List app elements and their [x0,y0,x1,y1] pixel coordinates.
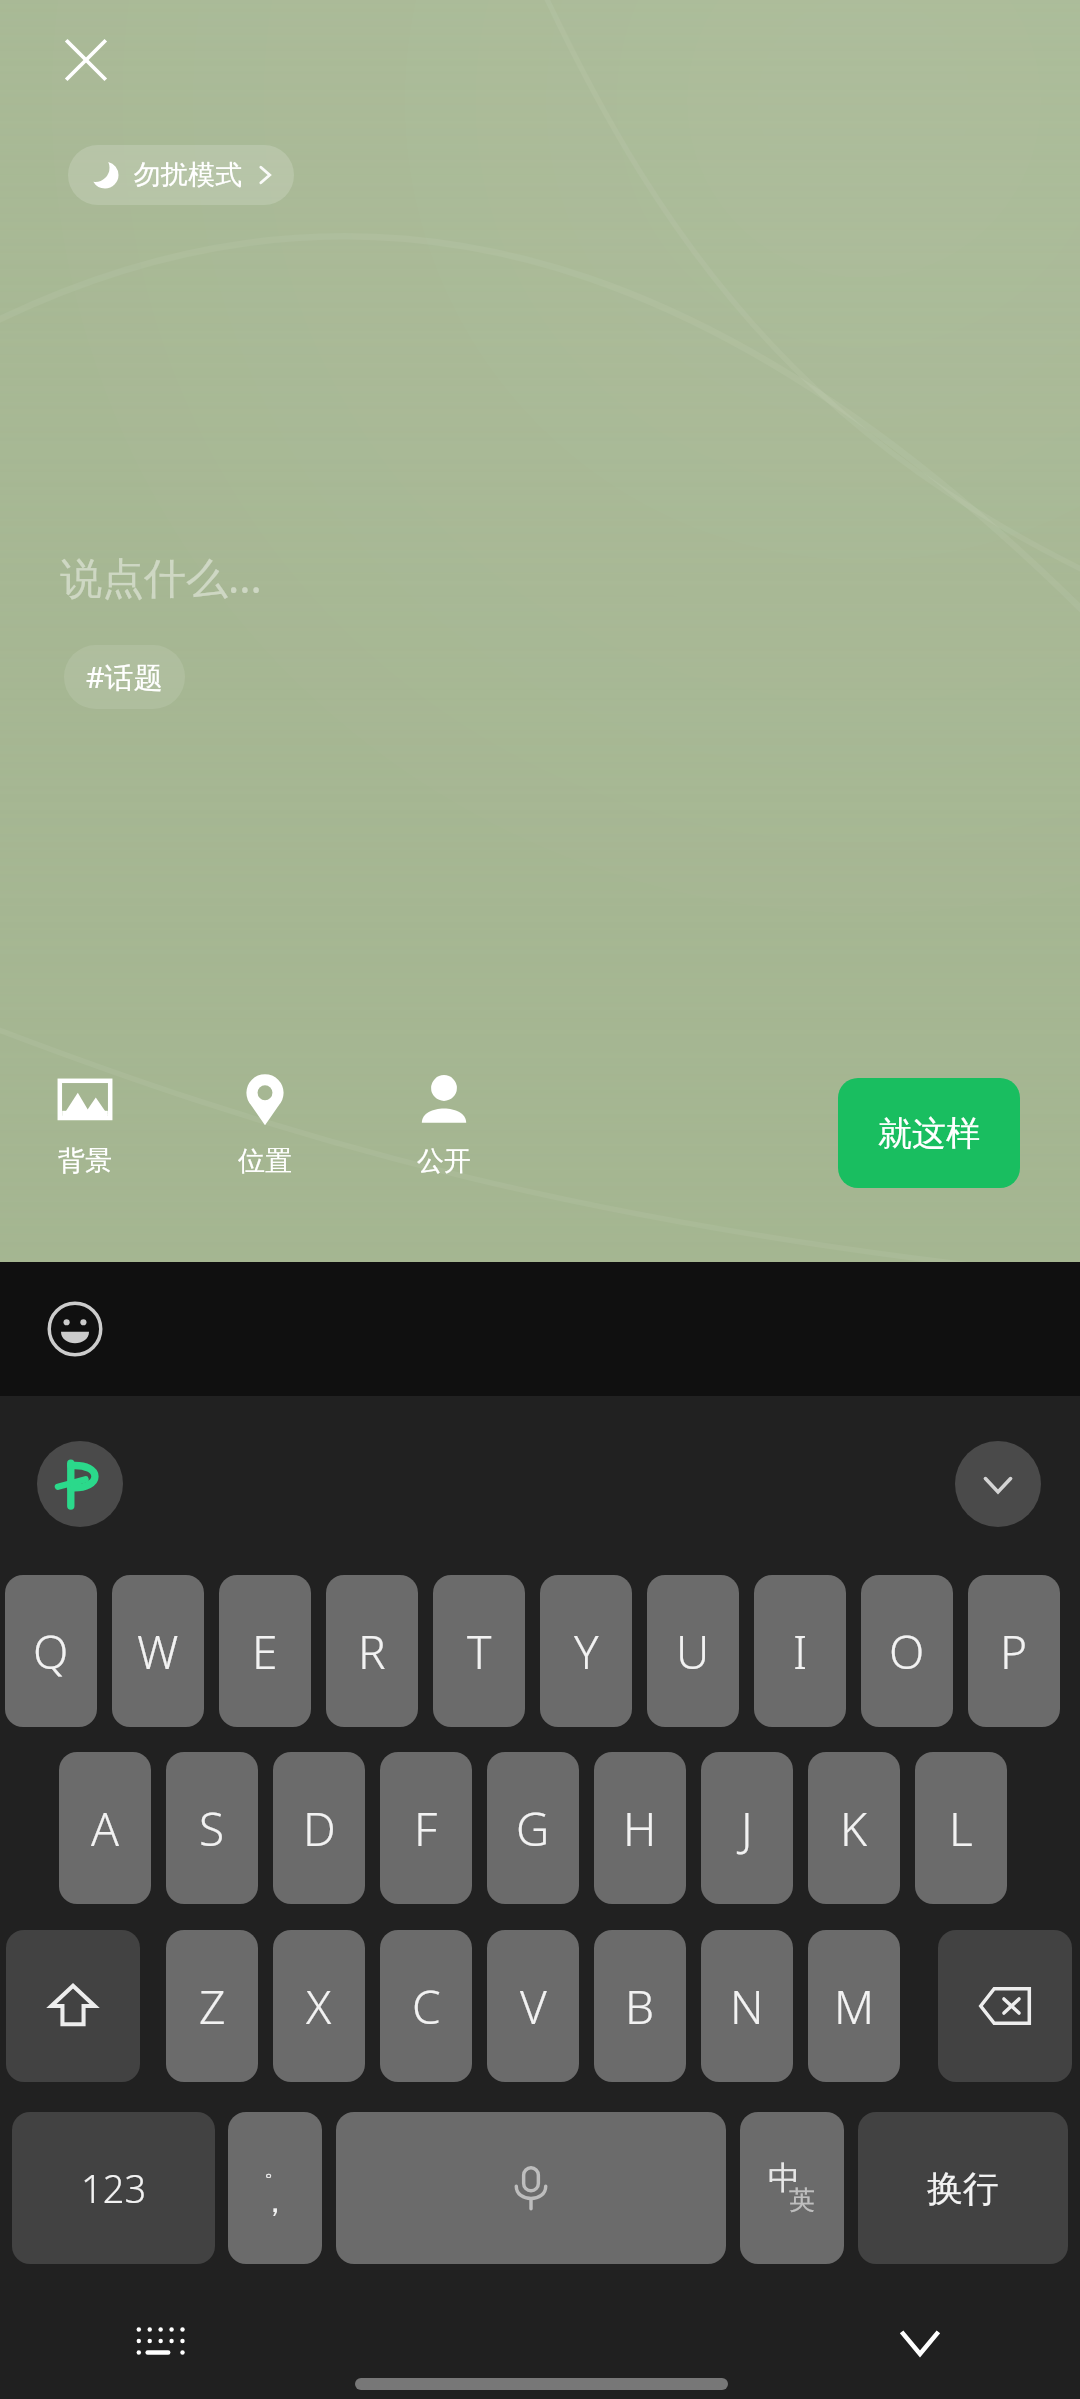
button[interactable]: 勿扰模式 [68,145,294,205]
staticText: N [730,1975,764,2038]
staticText: C [412,1975,441,2038]
staticText: G [516,1797,550,1860]
staticText: 。 [264,2155,286,2183]
button[interactable]: W [112,1575,204,1727]
staticText: V [520,1975,547,2038]
button[interactable]: B [594,1930,686,2082]
button[interactable]: 位置 [200,1060,330,1188]
button[interactable]: S [166,1752,258,1904]
staticText: U [676,1620,710,1683]
staticText: 说点什么... [60,548,262,605]
staticText: A [91,1797,119,1860]
button[interactable]: U [647,1575,739,1727]
button[interactable]: O [861,1575,953,1727]
button[interactable]: 换行 [858,2112,1068,2264]
button[interactable]: I [754,1575,846,1727]
staticText: P [1000,1620,1028,1683]
staticText: ， [260,2183,290,2221]
staticText: W [137,1620,179,1683]
button[interactable]: C [380,1930,472,2082]
staticText: 123 [81,2162,147,2214]
staticText: O [889,1620,925,1683]
staticText: M [834,1975,875,2038]
staticText: F [414,1797,438,1860]
staticText: E [252,1620,278,1683]
button[interactable]: N [701,1930,793,2082]
button[interactable]: G [487,1752,579,1904]
button[interactable]: A [59,1752,151,1904]
button[interactable]: 123 [12,2112,215,2264]
button[interactable]: 收起 [955,1441,1041,1527]
button[interactable]: 按键 [336,2112,726,2264]
button[interactable]: 按键 [938,1930,1072,2082]
staticText: S [199,1797,225,1860]
staticText: 勿扰模式 [134,158,242,192]
button[interactable]: K [808,1752,900,1904]
staticText: K [840,1797,868,1860]
button[interactable]: 按键 [228,2112,322,2264]
button[interactable]: M [808,1930,900,2082]
button[interactable]: 按键 [740,2112,844,2264]
button[interactable]: X [273,1930,365,2082]
button[interactable]: 输入法 [37,1441,123,1527]
staticText: 就这样 [878,1112,980,1155]
button[interactable]: F [380,1752,472,1904]
staticText: 英 [789,2184,815,2217]
staticText: Z [199,1975,226,2038]
button[interactable]: 按键 [6,1930,140,2082]
button[interactable]: Q [5,1575,97,1727]
button[interactable]: H [594,1752,686,1904]
button[interactable]: R [326,1575,418,1727]
button[interactable]: L [915,1752,1007,1904]
button[interactable]: E [219,1575,311,1727]
button[interactable]: 键盘 [110,2294,210,2394]
staticText: #话题 [86,657,163,697]
staticText: X [306,1975,332,2038]
button[interactable]: 背景 [20,1060,150,1188]
button[interactable]: 关闭 [38,12,134,108]
staticText: D [303,1797,336,1860]
button[interactable]: 表情 [28,1282,122,1376]
staticText: 换行 [927,2166,999,2211]
staticText: B [625,1975,655,2038]
staticText: L [949,1797,973,1860]
staticText: 位置 [238,1144,292,1178]
staticText: H [623,1797,657,1860]
button[interactable]: 就这样 [838,1078,1020,1188]
staticText: Y [574,1620,599,1683]
staticText: I [793,1620,808,1683]
staticText: 背景 [58,1144,112,1178]
button[interactable]: V [487,1930,579,2082]
staticText: 中 [768,2158,800,2198]
staticText: Q [33,1620,69,1683]
button[interactable]: 公开 [379,1060,509,1188]
staticText: T [467,1620,492,1683]
button[interactable]: #话题 [64,645,185,709]
staticText: 公开 [417,1144,471,1178]
button[interactable]: Y [540,1575,632,1727]
button[interactable]: J [701,1752,793,1904]
button[interactable]: P [968,1575,1060,1727]
staticText: J [741,1797,753,1860]
staticText: R [358,1620,386,1683]
button[interactable]: T [433,1575,525,1727]
button[interactable]: 收起键盘 [870,2292,970,2392]
button[interactable]: D [273,1752,365,1904]
button[interactable]: Z [166,1930,258,2082]
